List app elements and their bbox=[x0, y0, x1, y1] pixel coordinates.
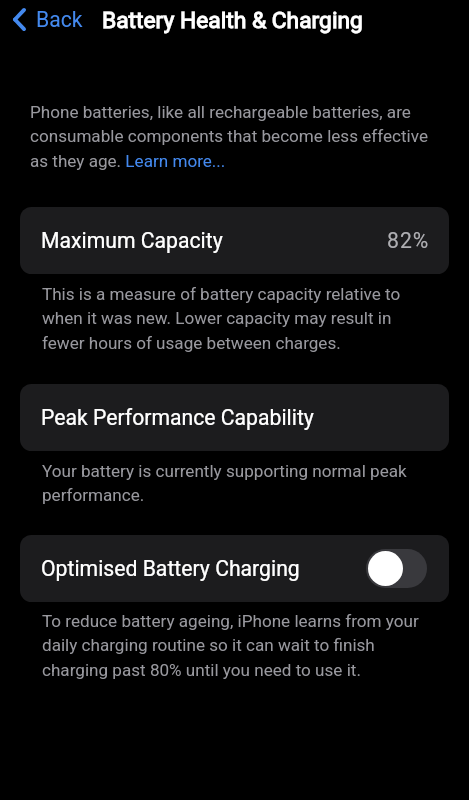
button[interactable]: Back bbox=[8, 3, 89, 36]
staticText: Your battery is currently supporting nor… bbox=[42, 461, 428, 506]
staticText: 82% bbox=[387, 228, 430, 253]
button[interactable]: Maximum Capacity bbox=[20, 207, 449, 274]
staticText: Phone batteries, like all rechargeable b… bbox=[30, 102, 436, 172]
button[interactable]: Peak Performance Capability bbox=[20, 384, 449, 451]
staticText: Peak Performance Capability bbox=[41, 405, 314, 430]
staticText: Optimised Battery Charging bbox=[41, 556, 300, 581]
staticText: Battery Health & Charging bbox=[102, 7, 363, 34]
staticText: Maximum Capacity bbox=[41, 228, 223, 253]
staticText: To reduce battery ageing, iPhone learns … bbox=[42, 611, 428, 681]
staticText: This is a measure of battery capacity re… bbox=[42, 284, 428, 354]
staticText: Back bbox=[36, 7, 83, 32]
button[interactable]: Optimised Battery Charging bbox=[366, 549, 427, 588]
other: Back bbox=[13, 8, 26, 31]
